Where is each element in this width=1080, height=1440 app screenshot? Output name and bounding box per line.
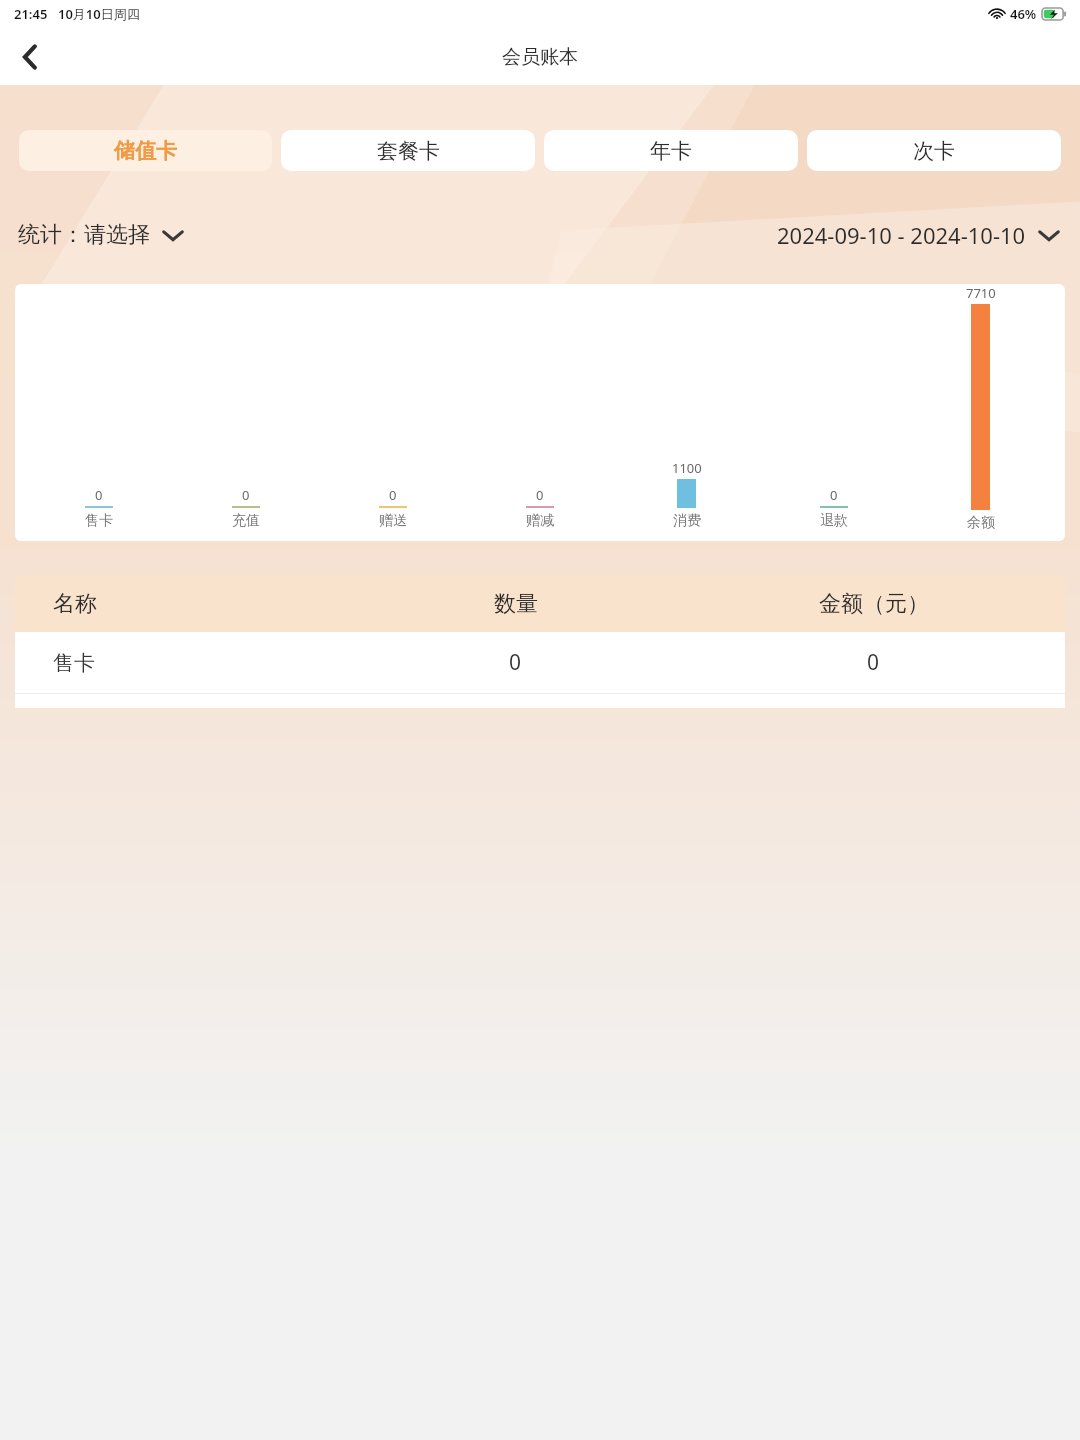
staticText: 售卡 [85, 512, 113, 530]
staticText: 售卡 [53, 650, 95, 676]
button[interactable]: 售卡 [15, 632, 1065, 693]
button[interactable]: 2024-09-10 - 2024-10-10 [773, 216, 1064, 254]
staticText: 10月10日周四 [58, 5, 140, 23]
staticText: 7710 [966, 284, 996, 302]
staticText: 退款 [820, 512, 848, 530]
button[interactable]: 套餐卡 [281, 130, 535, 171]
staticText: 年卡 [650, 138, 692, 164]
staticText: 赠减 [526, 512, 554, 530]
staticText: 21:45 [14, 5, 48, 23]
staticText: 0 [242, 486, 250, 504]
button[interactable]: 次卡 [807, 130, 1061, 171]
staticText: 金额（元） [819, 590, 929, 618]
staticText: 46% [1010, 5, 1037, 23]
staticText: 赠送 [379, 512, 407, 530]
staticText: 0 [830, 486, 838, 504]
button[interactable]: 储值卡 [19, 130, 272, 171]
button[interactable]: 年卡 [544, 130, 798, 171]
staticText: 0 [509, 648, 522, 677]
staticText: 次卡 [913, 138, 955, 164]
staticText: 储值卡 [114, 138, 177, 164]
staticText: 0 [867, 648, 880, 677]
staticText: 余额 [967, 514, 995, 532]
staticText: 0 [95, 486, 103, 504]
staticText: 统计：请选择 [18, 221, 150, 249]
button[interactable]: Back [6, 33, 54, 81]
staticText: 2024-09-10 - 2024-10-10 [777, 220, 1026, 250]
staticText: 0 [536, 486, 544, 504]
staticText: 0 [389, 486, 397, 504]
staticText: 充值 [232, 512, 260, 530]
staticText: 套餐卡 [377, 138, 440, 164]
staticText: 会员账本 [502, 45, 578, 69]
staticText: 名称 [53, 590, 97, 618]
staticText: 数量 [494, 590, 538, 618]
staticText: 消费 [673, 512, 701, 530]
staticText: 1100 [672, 459, 702, 477]
button[interactable]: 统计：请选择 [14, 217, 188, 253]
